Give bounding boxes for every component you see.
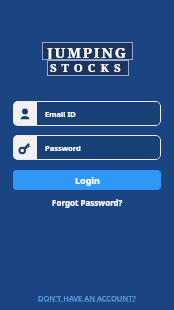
staticText: JUMPING — [47, 42, 128, 60]
staticText: Forgot Password? — [52, 197, 123, 208]
staticText: STOCKS — [50, 60, 126, 76]
staticText: DON'T HAVE AN ACCOUNT? — [38, 293, 136, 303]
button[interactable]: Login — [13, 170, 161, 190]
button[interactable]: Email ID — [13, 101, 161, 126]
button[interactable]: Password — [13, 135, 161, 160]
button[interactable]: DON'T HAVE AN ACCOUNT? — [38, 293, 136, 310]
staticText: Login — [75, 174, 100, 186]
button[interactable]: Forgot Password? — [52, 197, 123, 208]
staticText: Password — [45, 143, 81, 153]
staticText: Email ID — [45, 109, 76, 119]
